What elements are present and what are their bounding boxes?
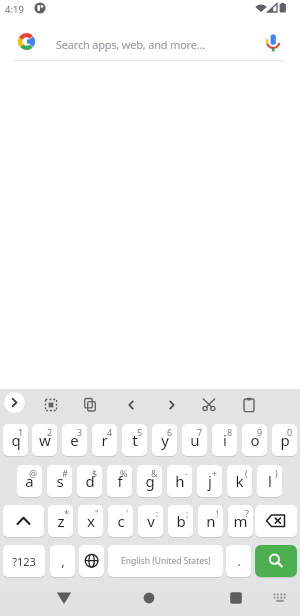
staticText: (: [245, 467, 248, 479]
staticText: ?123: [12, 554, 36, 569]
staticText: &: [151, 467, 158, 479]
button[interactable]: [269, 587, 291, 609]
button[interactable]: y: [152, 424, 177, 456]
button[interactable]: ,: [50, 545, 75, 577]
staticText: y: [161, 430, 169, 450]
button[interactable]: [3, 505, 44, 537]
staticText: h: [175, 471, 185, 491]
button[interactable]: c: [108, 505, 133, 537]
staticText: i: [223, 430, 227, 450]
staticText: 7: [197, 426, 203, 438]
staticText: u: [190, 430, 200, 450]
staticText: d: [85, 471, 95, 491]
staticText: @: [29, 467, 38, 479]
staticText: s: [56, 471, 64, 491]
staticText: %: [120, 467, 128, 479]
staticText: p: [280, 430, 290, 450]
button[interactable]: r: [92, 424, 117, 456]
button[interactable]: f: [107, 465, 132, 497]
button[interactable]: t: [122, 424, 147, 456]
staticText: 5: [137, 426, 143, 438]
staticText: a: [25, 471, 34, 491]
button[interactable]: a: [17, 465, 42, 497]
button[interactable]: .: [226, 545, 251, 577]
staticText: ): [275, 467, 278, 479]
staticText: k: [235, 471, 244, 491]
button[interactable]: [255, 545, 297, 577]
staticText: w: [39, 430, 51, 450]
button[interactable]: l: [257, 465, 282, 497]
staticText: 1: [18, 426, 24, 438]
staticText: r: [101, 430, 108, 450]
staticText: ?: [245, 507, 249, 519]
button[interactable]: [135, 584, 163, 612]
staticText: $: [92, 467, 98, 479]
staticText: c: [117, 511, 125, 531]
staticText: +: [212, 467, 218, 479]
staticText: j: [208, 471, 212, 491]
button[interactable]: English (United States): [108, 545, 223, 577]
staticText: !: [216, 507, 219, 519]
button[interactable]: i: [212, 424, 237, 456]
button[interactable]: o: [242, 424, 267, 456]
button[interactable]: [255, 505, 297, 537]
staticText: t: [132, 430, 138, 450]
staticText: -: [185, 467, 188, 479]
staticText: m: [233, 511, 248, 531]
staticText: ,: [61, 552, 65, 570]
staticText: f: [117, 471, 123, 491]
staticText: n: [206, 511, 216, 531]
button[interactable]: e: [62, 424, 87, 456]
button[interactable]: ?123: [3, 545, 45, 577]
button[interactable]: [197, 393, 221, 417]
button[interactable]: h: [167, 465, 192, 497]
staticText: 4:19: [5, 3, 24, 16]
staticText: ': [126, 507, 129, 519]
button[interactable]: g: [137, 465, 162, 497]
staticText: 0: [287, 426, 293, 438]
staticText: ;: [186, 507, 189, 519]
button[interactable]: x: [78, 505, 103, 537]
button[interactable]: [119, 393, 143, 417]
staticText: z: [57, 511, 65, 531]
button[interactable]: k: [227, 465, 252, 497]
staticText: English (United States): [121, 555, 211, 567]
button[interactable]: s: [47, 465, 72, 497]
staticText: q: [11, 430, 21, 450]
button[interactable]: q: [3, 424, 28, 456]
staticText: e: [70, 430, 79, 450]
button[interactable]: z: [48, 505, 73, 537]
staticText: x: [87, 511, 95, 531]
staticText: .: [237, 552, 241, 570]
staticText: 4: [107, 426, 113, 438]
button[interactable]: [237, 393, 261, 417]
button[interactable]: n: [198, 505, 223, 537]
staticText: Search apps, web, and more…: [56, 37, 206, 52]
staticText: :: [156, 507, 159, 519]
button[interactable]: m: [228, 505, 253, 537]
staticText: 3: [77, 426, 83, 438]
button[interactable]: w: [32, 424, 57, 456]
button[interactable]: [160, 393, 184, 417]
staticText: g: [145, 471, 155, 491]
staticText: 6: [167, 426, 173, 438]
button[interactable]: v: [138, 505, 163, 537]
staticText: ": [95, 507, 99, 519]
staticText: 2: [47, 426, 53, 438]
button[interactable]: [0, 16, 300, 61]
staticText: b: [176, 511, 186, 531]
staticText: 8: [227, 426, 233, 438]
button[interactable]: b: [168, 505, 193, 537]
button[interactable]: [39, 393, 63, 417]
button[interactable]: p: [272, 424, 297, 456]
button[interactable]: [78, 393, 102, 417]
staticText: l: [268, 471, 272, 491]
button[interactable]: [50, 584, 78, 612]
button[interactable]: u: [182, 424, 207, 456]
staticText: 9: [257, 426, 263, 438]
button[interactable]: j: [197, 465, 222, 497]
button[interactable]: [4, 392, 25, 413]
button[interactable]: d: [77, 465, 102, 497]
button[interactable]: [79, 545, 104, 577]
button[interactable]: [222, 584, 250, 612]
